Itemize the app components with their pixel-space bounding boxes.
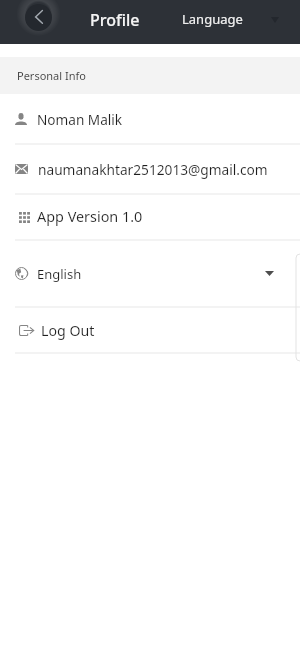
staticText: naumanakhtar2512013@gmail.com <box>38 160 268 179</box>
staticText: Personal Info <box>17 68 86 83</box>
staticText: Noman Malik <box>37 110 123 129</box>
button[interactable]: English <box>0 240 300 307</box>
button[interactable]: Back <box>25 4 52 31</box>
staticText: English <box>37 265 82 283</box>
staticText: Language <box>182 10 243 28</box>
button[interactable]: Language <box>170 0 288 44</box>
button[interactable]: App Version 1.0 <box>0 194 300 240</box>
button[interactable]: naumanakhtar2512013@gmail.com <box>0 144 300 194</box>
button[interactable]: Noman Malik <box>0 94 300 144</box>
staticText: App Version 1.0 <box>37 207 143 227</box>
staticText: Log Out <box>41 321 95 340</box>
staticText: Profile <box>90 9 140 31</box>
button[interactable]: Log Out <box>0 307 300 353</box>
